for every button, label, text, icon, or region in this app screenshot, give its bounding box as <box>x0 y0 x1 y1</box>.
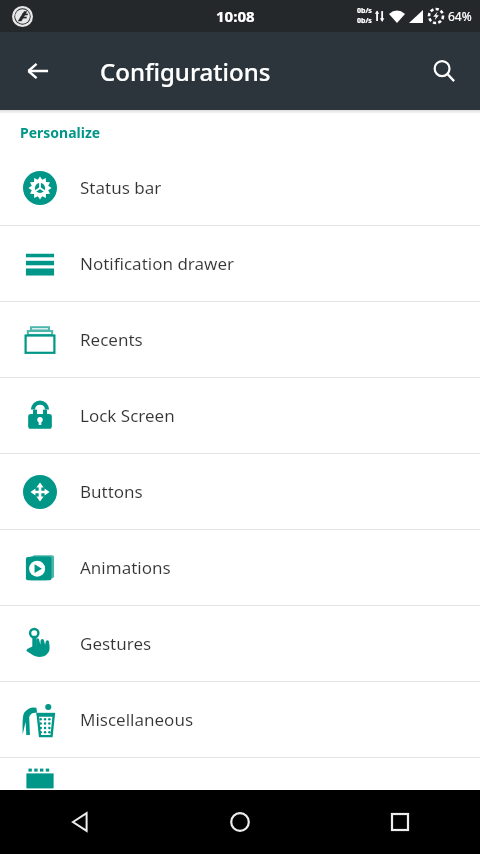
staticText: Configurations <box>100 55 271 88</box>
button[interactable]: Back <box>0 790 160 854</box>
staticText: 0b/s <box>357 6 372 16</box>
button[interactable]: Miscellaneous <box>0 682 480 757</box>
staticText: 10:08 <box>216 6 255 26</box>
staticText: Lock Screen <box>80 404 175 427</box>
button[interactable]: Lock Screen <box>0 378 480 453</box>
staticText: Recents <box>80 328 143 351</box>
staticText: Buttons <box>80 480 143 503</box>
staticText: Personalize <box>20 123 101 142</box>
staticText: Miscellaneous <box>80 708 194 731</box>
staticText: Animations <box>80 556 171 579</box>
button[interactable]: Buttons <box>0 454 480 529</box>
staticText: Gestures <box>80 632 152 655</box>
button[interactable] <box>0 758 480 788</box>
staticText: Status bar <box>80 176 162 199</box>
button[interactable]: Recents <box>320 790 480 854</box>
button[interactable]: Recents <box>0 302 480 377</box>
button[interactable]: Search <box>420 47 468 95</box>
button[interactable]: Notification drawer <box>0 226 480 301</box>
button[interactable]: Gestures <box>0 606 480 681</box>
button[interactable]: Back <box>14 47 62 95</box>
button[interactable]: Home <box>160 790 320 854</box>
button[interactable]: Animations <box>0 530 480 605</box>
staticText: 0b/s <box>357 16 372 26</box>
staticText: Notification drawer <box>80 252 235 275</box>
button[interactable]: Status bar <box>0 150 480 225</box>
staticText: 64% <box>448 8 472 24</box>
